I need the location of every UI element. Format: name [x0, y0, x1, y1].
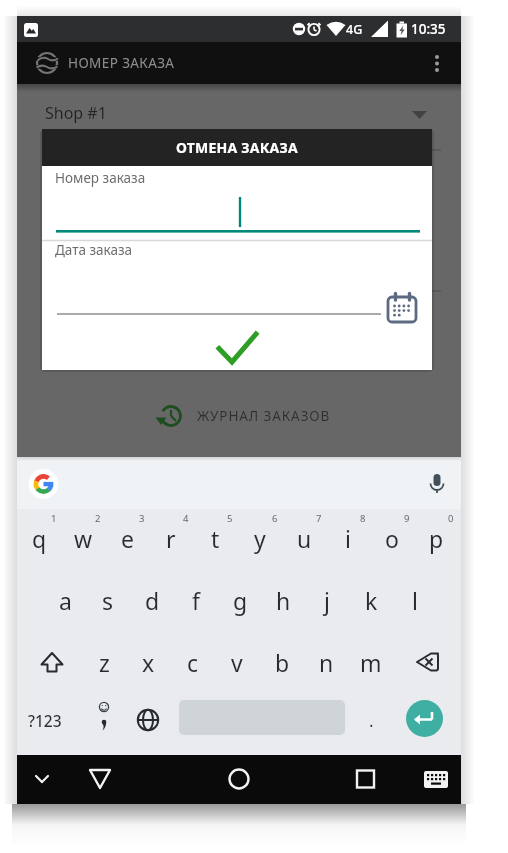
staticText: j	[324, 585, 330, 616]
staticText: o	[385, 523, 399, 554]
staticText: Shop #1	[45, 102, 107, 124]
staticText: g	[233, 585, 248, 616]
staticText: ЖУРНАЛ ЗАКАЗОВ	[197, 407, 331, 425]
staticText: y	[254, 523, 266, 554]
staticText: r	[166, 523, 176, 554]
staticText: p	[429, 523, 444, 554]
button[interactable]: k	[350, 574, 392, 626]
button[interactable]: h	[262, 574, 304, 626]
button[interactable]: y	[239, 512, 281, 564]
staticText: u	[297, 523, 312, 554]
button[interactable]: u	[283, 512, 325, 564]
button[interactable]	[224, 764, 254, 794]
button[interactable]: r	[150, 512, 192, 564]
button[interactable]	[29, 468, 59, 498]
button[interactable]: l	[394, 574, 436, 626]
button[interactable]	[37, 96, 437, 136]
staticText: Дата заказа	[55, 241, 133, 259]
staticText: v	[231, 647, 243, 678]
button[interactable]: .	[350, 694, 392, 746]
staticText: e	[121, 523, 134, 554]
button[interactable]: t	[194, 512, 236, 564]
button[interactable]	[401, 636, 445, 688]
staticText: 4	[183, 512, 189, 525]
staticText: z	[99, 647, 110, 678]
button[interactable]	[30, 636, 74, 688]
staticText: k	[365, 585, 378, 616]
staticText: 1	[51, 512, 57, 525]
button[interactable]	[27, 764, 57, 794]
button[interactable]: n	[305, 636, 347, 688]
button[interactable]	[96, 714, 112, 740]
button[interactable]	[350, 764, 380, 794]
staticText: 7	[316, 512, 322, 525]
staticText: 3	[139, 512, 145, 525]
button[interactable]	[56, 184, 420, 234]
staticText: w	[74, 523, 93, 554]
button[interactable]	[406, 700, 443, 737]
staticText: 4G	[346, 21, 363, 38]
staticText: x	[142, 647, 155, 678]
button[interactable]: f	[175, 574, 217, 626]
button[interactable]: m	[350, 636, 392, 688]
button[interactable]: p	[415, 512, 457, 564]
button[interactable]: d	[131, 574, 173, 626]
button[interactable]	[422, 468, 452, 498]
button[interactable]: s	[87, 574, 129, 626]
button[interactable]	[85, 764, 115, 794]
button[interactable]: q	[18, 512, 60, 564]
staticText: Номер заказа	[55, 169, 146, 187]
staticText: 0	[448, 512, 454, 525]
button[interactable]	[200, 325, 274, 369]
staticText: b	[275, 647, 290, 678]
staticText: ?123	[28, 710, 62, 731]
staticText: s	[102, 585, 114, 616]
staticText: 6	[272, 512, 278, 525]
staticText: h	[276, 585, 291, 616]
button[interactable]: b	[261, 636, 303, 688]
staticText: t	[211, 523, 220, 554]
button[interactable]: x	[127, 636, 169, 688]
button[interactable]: w	[62, 512, 104, 564]
staticText: q	[32, 523, 47, 554]
button[interactable]: i	[327, 512, 369, 564]
staticText: 2	[95, 512, 101, 525]
button[interactable]: c	[172, 636, 214, 688]
button[interactable]: a	[44, 574, 86, 626]
button[interactable]: g	[219, 574, 261, 626]
staticText: f	[192, 585, 200, 616]
staticText: 10:35	[411, 20, 446, 38]
button[interactable]	[147, 400, 337, 433]
staticText: .	[369, 709, 374, 732]
button[interactable]	[57, 259, 381, 316]
button[interactable]: z	[83, 636, 125, 688]
staticText: l	[412, 585, 418, 616]
button[interactable]: v	[216, 636, 258, 688]
button[interactable]: ?123	[24, 694, 66, 746]
button[interactable]	[126, 696, 170, 746]
staticText: c	[187, 647, 199, 678]
button[interactable]: e	[106, 512, 148, 564]
staticText: a	[59, 585, 72, 616]
staticText: 5	[227, 512, 233, 525]
button[interactable]: o	[371, 512, 413, 564]
staticText: n	[319, 647, 334, 678]
button[interactable]	[421, 764, 451, 794]
staticText: d	[145, 585, 160, 616]
staticText: НОМЕР ЗАКАЗА	[68, 54, 175, 72]
button[interactable]	[425, 47, 451, 79]
staticText: 8	[360, 512, 366, 525]
button[interactable]	[383, 289, 421, 327]
staticText: m	[360, 647, 382, 678]
button[interactable]: j	[306, 574, 348, 626]
staticText: i	[345, 523, 351, 554]
staticText: 9	[404, 512, 410, 525]
staticText: ОТМЕНА ЗАКАЗА	[176, 138, 298, 157]
